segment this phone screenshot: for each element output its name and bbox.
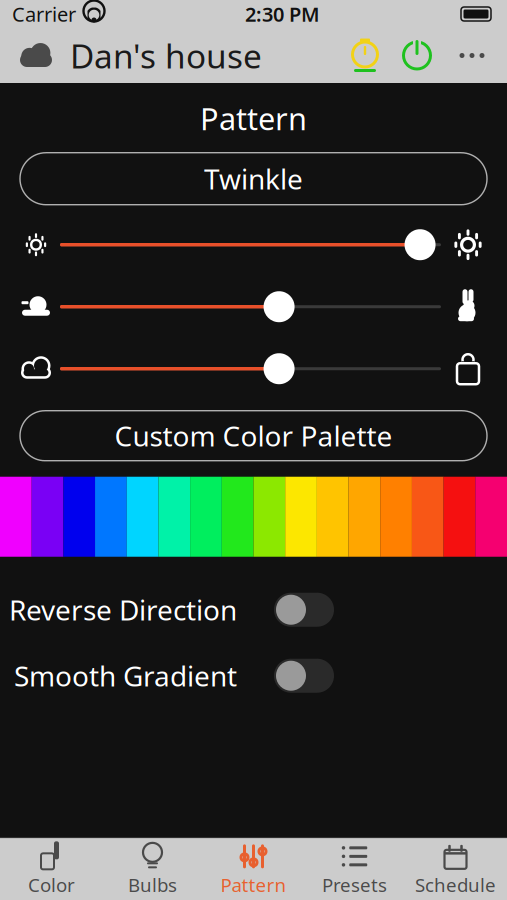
staticText: Pattern [200, 98, 307, 139]
staticText: Twinkle [204, 160, 303, 197]
staticText: Color [28, 872, 75, 897]
staticText: Bulbs [128, 872, 177, 897]
staticText: Smooth Gradient [14, 657, 237, 694]
staticText: 2:30 PM [245, 1, 320, 27]
staticText: Schedule [415, 872, 496, 897]
button[interactable]: Power [391, 29, 443, 81]
button[interactable]: Color [1, 838, 102, 900]
button[interactable]: Custom Color Palette [20, 411, 487, 461]
button[interactable]: Smooth Gradient [0, 643, 507, 709]
button[interactable]: Pattern [203, 838, 304, 900]
button[interactable]: Schedule [405, 838, 506, 900]
button[interactable]: Bulbs [102, 838, 203, 900]
staticText: Carrier [12, 1, 76, 27]
button[interactable]: Reverse Direction [0, 577, 507, 643]
staticText: Dan's house [70, 33, 262, 78]
staticText: Custom Color Palette [114, 417, 392, 454]
button[interactable]: Twinkle [20, 153, 487, 205]
button[interactable]: Presets [304, 838, 405, 900]
staticText: Pattern [220, 872, 286, 897]
button[interactable]: Timer [339, 29, 391, 81]
staticText: Presets [322, 872, 387, 897]
staticText: Reverse Direction [9, 591, 237, 628]
button[interactable]: More [443, 29, 501, 81]
